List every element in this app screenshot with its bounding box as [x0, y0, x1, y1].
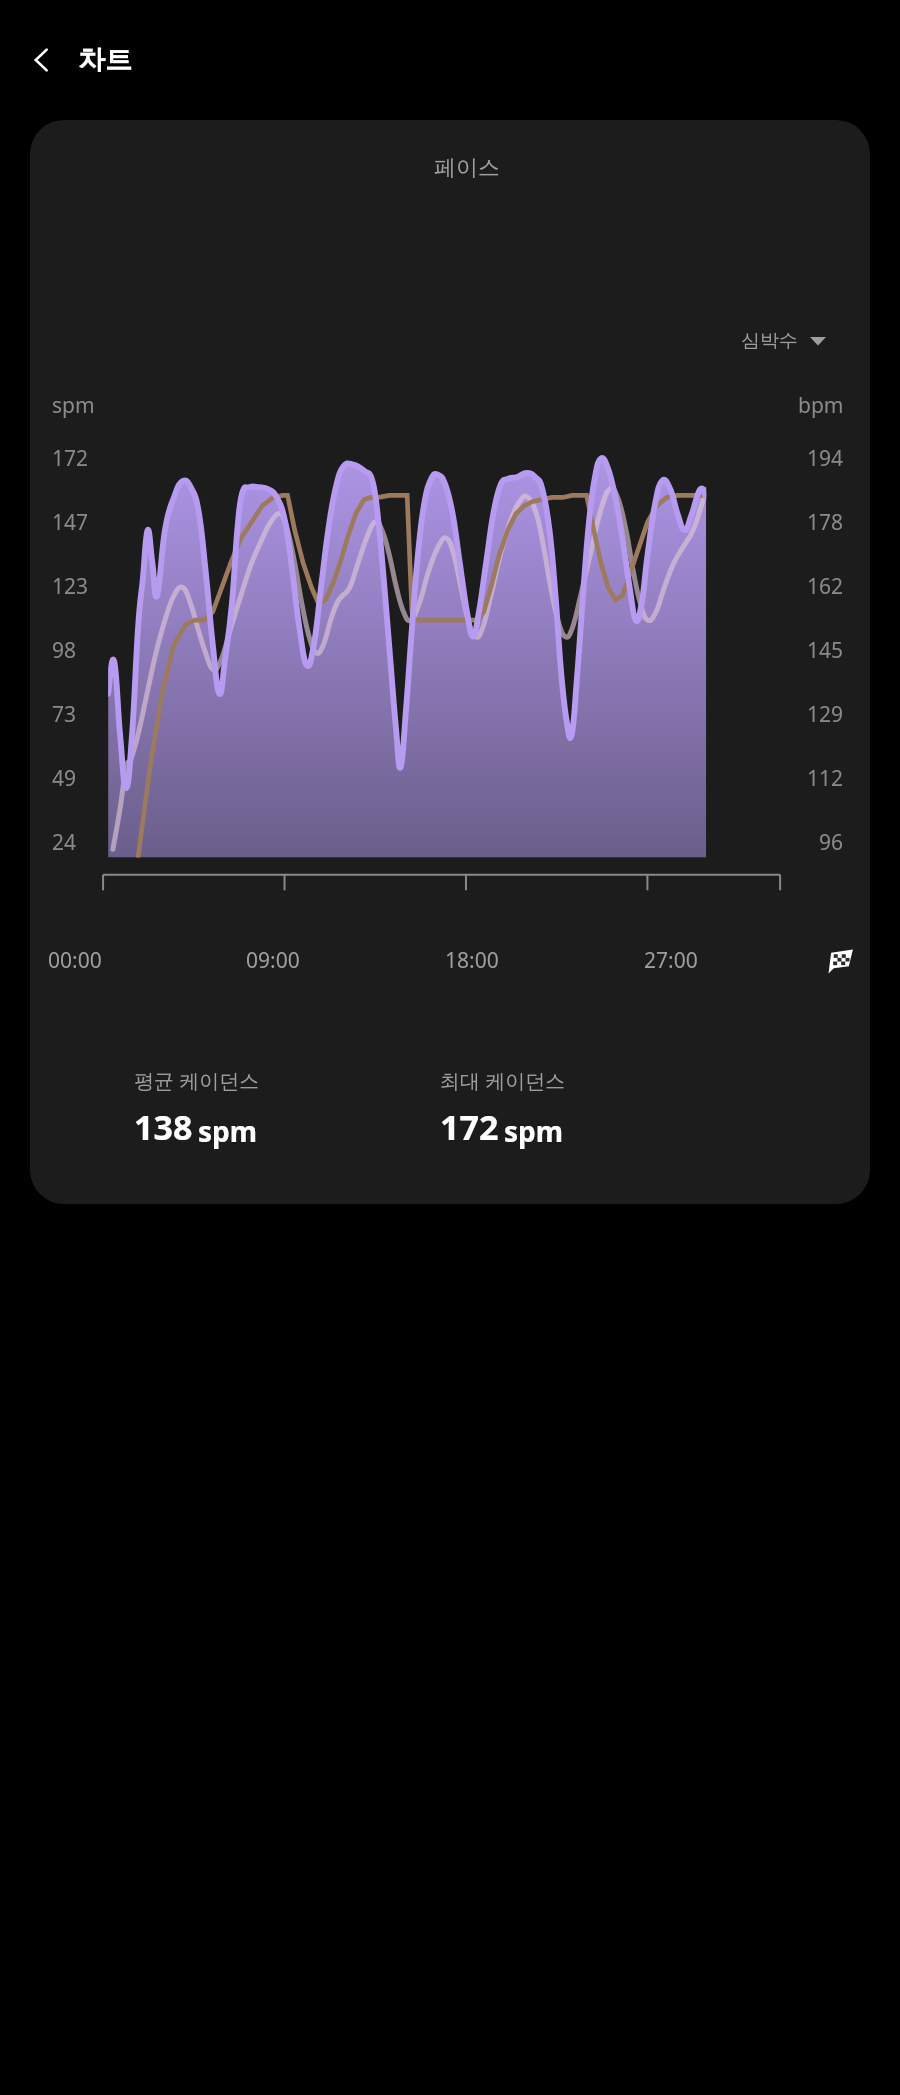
staticText: 147 [52, 508, 89, 537]
staticText: 145 [807, 636, 844, 665]
staticText: 162 [807, 572, 844, 601]
staticText: 96 [819, 828, 844, 857]
staticText: 00:00 [48, 946, 102, 975]
staticText: 172 [52, 444, 89, 473]
staticText: 172 [440, 1104, 499, 1150]
staticText: 09:00 [246, 946, 300, 975]
staticText: 178 [807, 508, 844, 537]
staticText: 24 [52, 828, 77, 857]
staticText: 27:00 [644, 946, 698, 975]
staticText: spm [504, 1112, 564, 1150]
staticText: bpm [798, 391, 844, 420]
staticText: 페이스 [434, 154, 500, 182]
staticText: 최대 케이던스 [440, 1067, 566, 1094]
staticText: 평균 케이던스 [134, 1067, 260, 1094]
staticText: 112 [807, 764, 844, 793]
staticText: 차트 [78, 43, 132, 77]
staticText: spm [52, 391, 95, 420]
button[interactable]: 페이스 [64, 154, 870, 193]
staticText: 98 [52, 636, 77, 665]
staticText: 194 [807, 444, 844, 473]
staticText: 138 [134, 1104, 193, 1150]
other: Finish [828, 948, 854, 974]
button[interactable]: 심박수 [737, 325, 830, 357]
staticText: 73 [52, 700, 77, 729]
button[interactable]: Back [14, 32, 70, 88]
staticText: 129 [807, 700, 844, 729]
staticText: 123 [52, 572, 89, 601]
staticText: 18:00 [445, 946, 499, 975]
staticText: 49 [52, 764, 77, 793]
staticText: 심박수 [741, 329, 798, 353]
staticText: spm [198, 1112, 258, 1150]
